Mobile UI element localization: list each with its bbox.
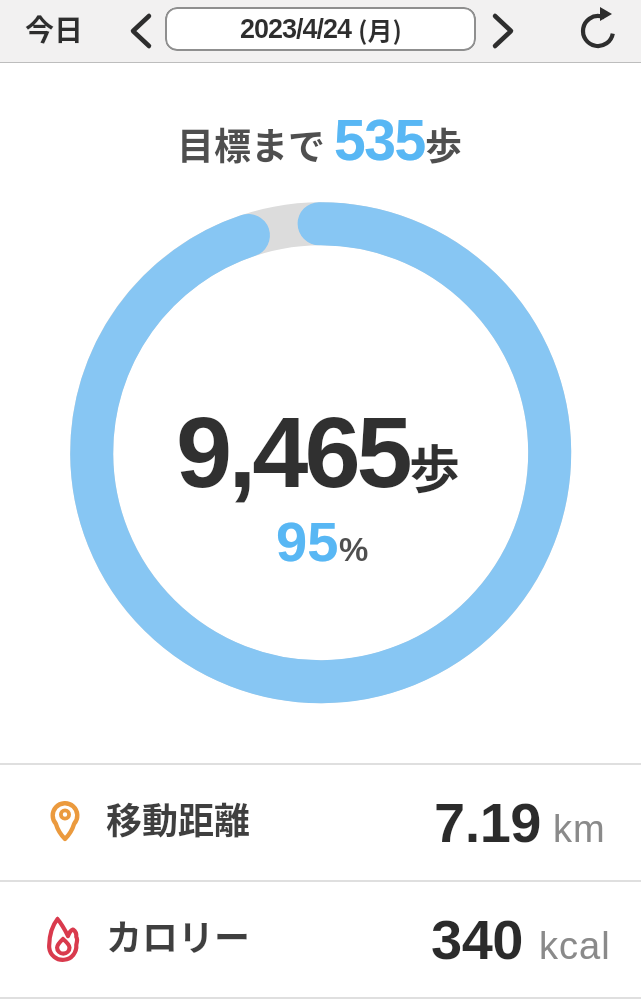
staticText: 7.19 [434,791,541,854]
staticText: 歩 [409,429,461,503]
staticText: 535 [334,108,425,172]
button[interactable]: 移動距離 [0,765,641,880]
button[interactable] [484,12,522,50]
staticText: 歩 [425,117,462,171]
staticText: kcal [539,925,611,967]
staticText: % [339,531,369,568]
button[interactable] [122,12,160,50]
staticText: 目標まで [177,117,334,171]
staticText: 移動距離 [106,792,251,844]
staticText: 今日 [25,7,84,49]
staticText: km [553,808,606,850]
staticText: カロリー [106,909,251,961]
staticText: (月) [358,11,402,47]
staticText: 340 [431,908,523,971]
button[interactable]: 2023/4/24 [165,7,476,51]
staticText: 2023/4/24 [240,14,358,44]
staticText: 95 [276,510,339,573]
button[interactable]: カロリー [0,882,641,997]
button[interactable] [576,9,620,53]
button[interactable]: 今日 [19,3,90,53]
staticText: 9,465 [176,396,409,509]
